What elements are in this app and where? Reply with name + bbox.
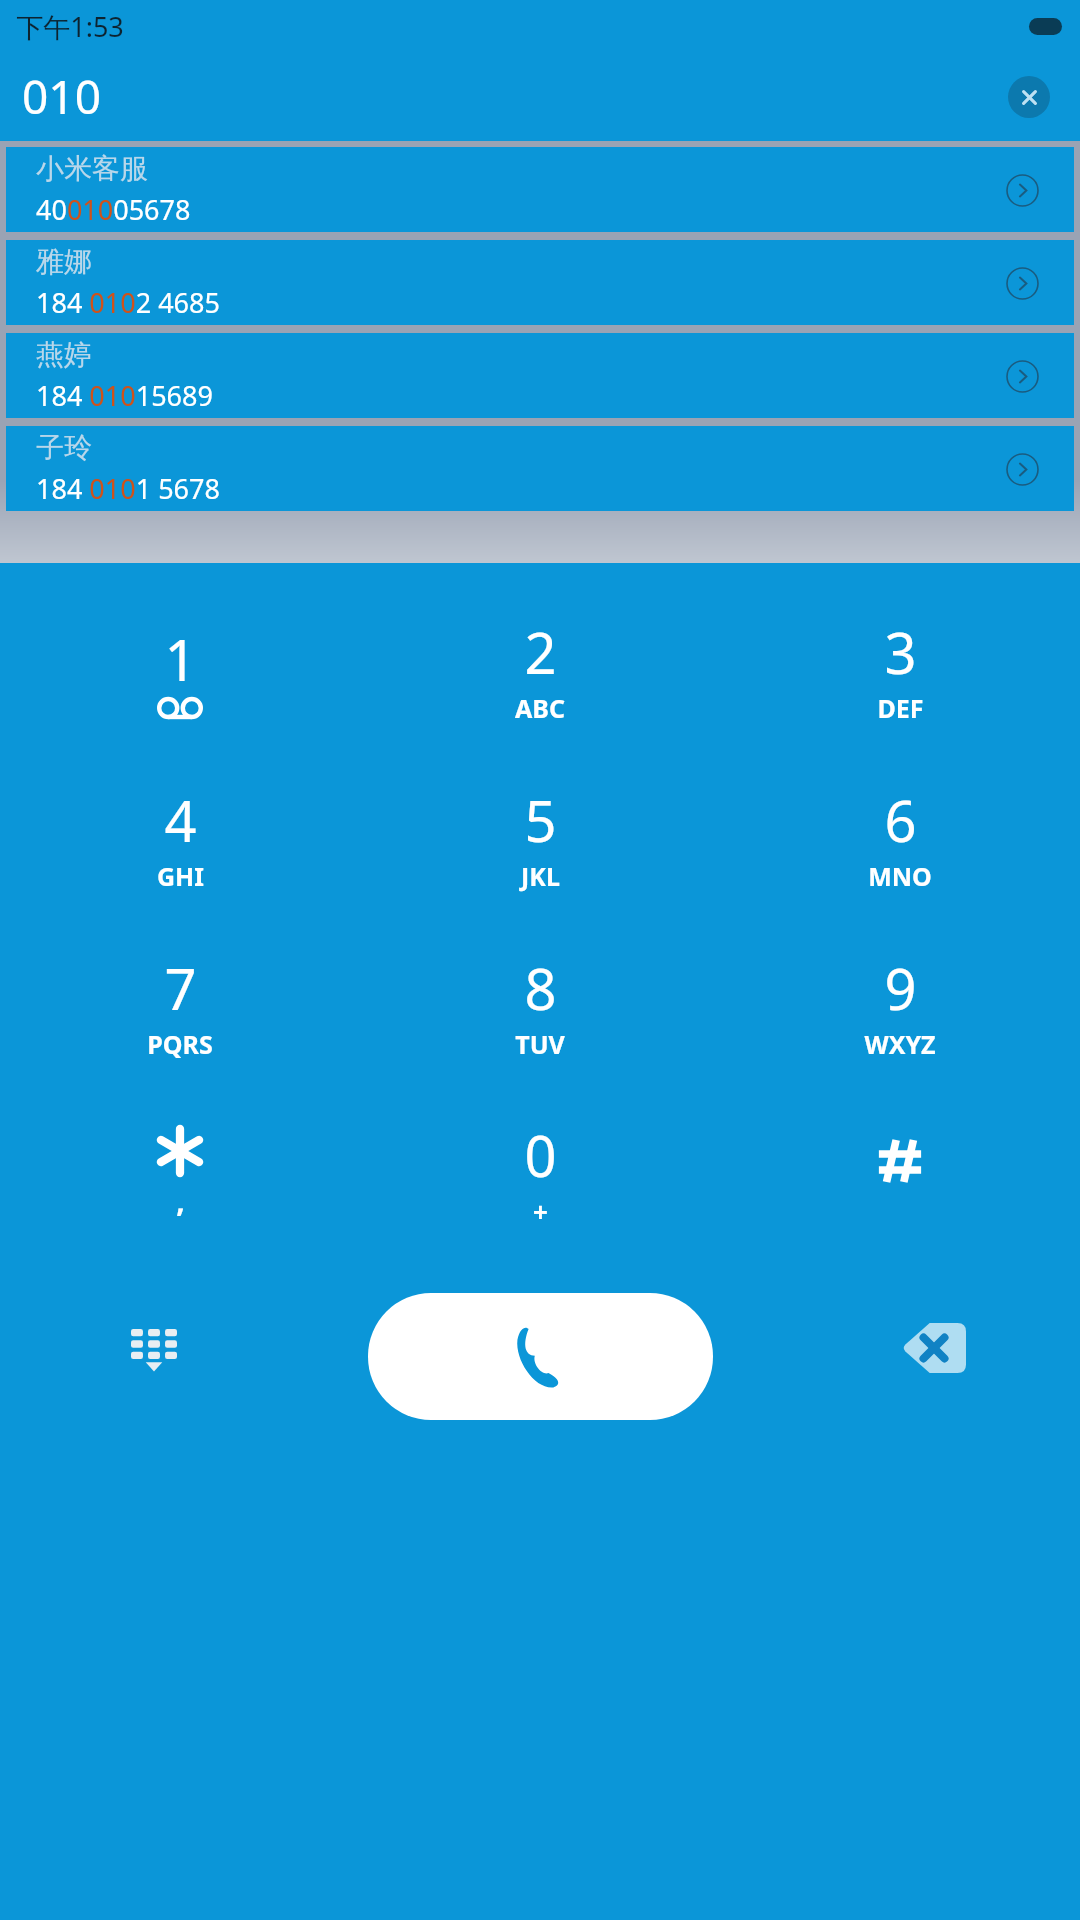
staticText: , [176,1180,185,1221]
button[interactable]: 6 [720,753,1080,921]
staticText: 子玲 [36,430,92,465]
button[interactable]: 0 [360,1089,720,1256]
button[interactable]: Contact details [1002,263,1042,303]
staticText: ABC [515,691,565,725]
staticText: 0 [524,1117,557,1193]
button[interactable]: 7 [0,921,360,1089]
button[interactable]: 子玲 [6,426,1074,511]
staticText: 5 [524,782,557,858]
staticText: 雅娜 [36,244,92,279]
staticText: 6 [884,782,917,858]
staticText: 4 [164,782,197,858]
button[interactable]: 燕婷 [6,333,1074,418]
staticText: PQRS [147,1027,213,1061]
staticText: 下午1:53 [16,8,124,45]
staticText: 4001005678 [36,191,191,228]
staticText: 小米客服 [36,151,148,186]
staticText: 010 [22,65,101,128]
staticText: 燕婷 [36,337,92,372]
staticText: 184 0101 5678 [36,470,220,507]
staticText: + [533,1194,548,1229]
button[interactable]: Clear number [1008,76,1050,118]
button[interactable]: Backspace [888,1302,980,1394]
staticText: TUV [515,1027,565,1061]
button[interactable] [720,1089,1080,1256]
button[interactable]: 1 [0,585,360,753]
button[interactable]: 2 [360,585,720,753]
button[interactable]: Hide dialpad [110,1312,198,1400]
staticText: 7 [164,950,197,1026]
staticText: 3 [884,614,917,690]
button[interactable]: 小米客服 [6,147,1074,232]
staticText: JKL [521,859,560,893]
button[interactable]: 4 [0,753,360,921]
staticText: 8 [524,950,557,1026]
button[interactable]: Call [368,1293,713,1420]
staticText: 184 01015689 [36,377,213,414]
staticText: 184 0102 4685 [36,284,220,321]
button[interactable]: 雅娜 [6,240,1074,325]
button[interactable]: Contact details [1002,449,1042,489]
staticText: DEF [877,691,924,725]
staticText: MNO [868,859,932,893]
staticText: WXYZ [864,1027,936,1061]
button[interactable]: Contact details [1002,356,1042,396]
button[interactable]: Contact details [1002,170,1042,210]
staticText: GHI [157,859,204,893]
staticText: 9 [884,950,917,1026]
button[interactable]: 9 [720,921,1080,1089]
button[interactable]: 5 [360,753,720,921]
button[interactable]: 3 [720,585,1080,753]
button[interactable]: 8 [360,921,720,1089]
staticText: 2 [524,614,557,690]
staticText: 1 [164,621,197,697]
button[interactable]: , [0,1089,360,1256]
